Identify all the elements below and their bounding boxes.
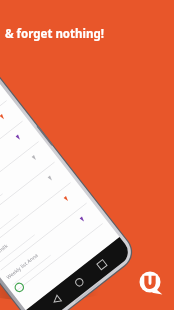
button[interactable]: App logo	[0, 0, 174, 310]
